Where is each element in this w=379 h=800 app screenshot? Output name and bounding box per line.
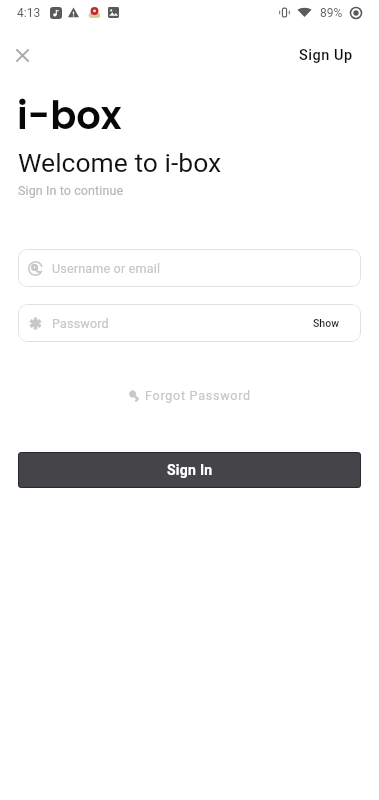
staticText: Password [52,316,109,331]
staticText: 89% [320,6,343,20]
button[interactable]: Username or email [18,249,361,287]
button[interactable]: Sign In [18,452,361,488]
button[interactable]: Forgot Password [122,383,257,408]
staticText: Sign In [167,462,213,478]
staticText: Sign In to continue [18,183,124,198]
staticText: 4:13 [17,6,41,20]
staticText: Welcome to i-box [18,147,222,178]
staticText: Sign Up [299,47,353,64]
button[interactable]: Close [9,42,35,68]
button[interactable]: Password [18,304,361,342]
staticText: Forgot Password [145,388,251,403]
button[interactable]: Sign Up [295,41,357,70]
button[interactable]: Show [313,317,339,329]
staticText: i-box [17,89,122,143]
staticText: Username or email [52,261,161,276]
